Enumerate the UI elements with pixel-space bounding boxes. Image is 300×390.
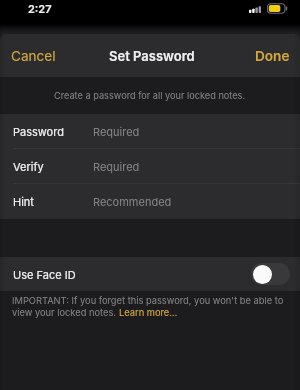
staticText: Create a password for all your locked no…	[54, 90, 246, 101]
button[interactable]: Use Face ID toggle	[251, 263, 290, 285]
button[interactable]: Hint	[0, 184, 300, 218]
staticText: Required	[93, 160, 140, 173]
button[interactable]: Password	[0, 114, 300, 148]
staticText: Required	[93, 125, 140, 138]
staticText: Recommended	[93, 195, 172, 208]
staticText: Hint	[13, 195, 34, 208]
button[interactable]: Verify	[0, 149, 300, 183]
staticText: IMPORTANT: If you forget this password, …	[12, 295, 284, 306]
button[interactable]: Done	[245, 39, 300, 73]
staticText: Done	[255, 48, 290, 64]
button[interactable]: Use Face ID	[0, 257, 300, 291]
button[interactable]: Learn more…	[119, 307, 178, 318]
button[interactable]: Cancel	[0, 39, 67, 73]
staticText: Set Password	[109, 48, 195, 64]
staticText: Cancel	[11, 48, 56, 64]
staticText: view your locked notes.	[12, 307, 119, 318]
staticText: 2:27	[28, 2, 52, 15]
staticText: Use Face ID	[13, 268, 76, 281]
staticText: Password	[13, 125, 64, 138]
staticText: Verify	[13, 160, 44, 173]
